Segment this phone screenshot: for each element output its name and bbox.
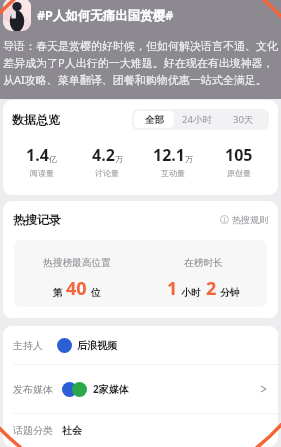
staticText: 发布媒体 [13, 383, 53, 396]
button[interactable]: 30天 [220, 111, 267, 128]
staticText: 主持人 [13, 339, 43, 352]
staticText: 亿 [49, 154, 57, 164]
staticText: 导语：春天是赏樱的好时候，但如何解决语言不通、文化差异成为了P人出行的一大难题。… [3, 39, 280, 87]
button[interactable]: 24小时 [174, 111, 220, 128]
staticText: 讨论量 [95, 168, 119, 178]
staticText: 12.1 [153, 144, 185, 166]
staticText: 热搜榜最高位置 [43, 257, 111, 269]
staticText: 社会 [62, 424, 82, 437]
staticText: 2 [206, 276, 217, 301]
button[interactable]: 发布媒体 [3, 365, 278, 413]
staticText: 热搜规则 [232, 214, 268, 225]
staticText: 105 [225, 144, 253, 166]
staticText: 30天 [233, 113, 254, 126]
staticText: 话题分类 [13, 424, 53, 437]
staticText: 第 [53, 287, 63, 299]
staticText: 小时 [181, 287, 201, 299]
staticText: 互动量 [161, 168, 185, 178]
staticText: 原创量 [227, 168, 251, 178]
staticText: 24小时 [182, 113, 212, 126]
staticText: 分钟 [220, 287, 240, 299]
staticText: 40 [66, 276, 87, 301]
staticText: 1 [167, 276, 178, 301]
staticText: 在榜时长 [184, 257, 223, 269]
button[interactable]: 全部 [134, 111, 174, 128]
staticText: 后浪视频 [77, 339, 117, 352]
staticText: 全部 [145, 114, 164, 126]
staticText: 热搜记录 [13, 212, 61, 227]
button[interactable]: 主持人 [3, 326, 278, 364]
staticText: 万 [185, 154, 193, 164]
staticText: 阅读量 [30, 168, 54, 178]
staticText: #P人如何无痛出国赏樱# [37, 7, 174, 24]
staticText: 数据总览 [12, 112, 60, 127]
staticText: 4.2 [92, 144, 115, 166]
staticText: 2家媒体 [93, 382, 129, 396]
staticText: 位 [91, 287, 101, 299]
staticText: 万 [115, 154, 123, 164]
staticText: 1.4 [26, 144, 49, 166]
button[interactable]: 热搜规则 [220, 214, 268, 225]
